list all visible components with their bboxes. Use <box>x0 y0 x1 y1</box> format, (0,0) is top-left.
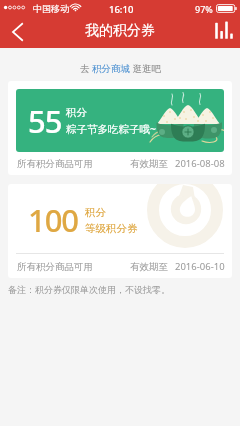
staticText: 积分 <box>66 106 87 119</box>
staticText: 100 <box>28 199 78 241</box>
staticText: 有效期至 <box>130 158 168 170</box>
button[interactable]: 100 <box>8 184 232 278</box>
staticText: 2016-08-08 <box>175 157 225 170</box>
staticText: 等级积分券 <box>85 222 138 235</box>
button[interactable]: Statistics <box>211 19 237 45</box>
staticText: 我的积分券 <box>85 22 155 40</box>
staticText: 中国移动 <box>33 3 69 14</box>
staticText: 2016-06-10 <box>175 260 225 273</box>
staticText: 备注：积分券仅限单次使用，不设找零。 <box>8 284 170 295</box>
staticText: 所有积分商品可用 <box>17 158 93 170</box>
staticText: 逛逛吧 <box>130 62 161 75</box>
staticText: 积分 <box>85 206 106 219</box>
staticText: 有效期至 <box>130 261 168 273</box>
button[interactable]: Back <box>4 19 30 45</box>
button[interactable]: 积分商城 <box>92 63 130 75</box>
staticText: 粽子节多吃粽子哦~ <box>66 122 157 136</box>
staticText: 所有积分商品可用 <box>17 261 93 273</box>
staticText: 55 <box>28 100 62 142</box>
staticText: 去 <box>80 62 92 75</box>
staticText: 97% <box>195 3 213 15</box>
staticText: 积分商城 <box>92 63 130 75</box>
staticText: 16:10 <box>109 3 134 16</box>
button[interactable]: 55 <box>8 81 232 175</box>
